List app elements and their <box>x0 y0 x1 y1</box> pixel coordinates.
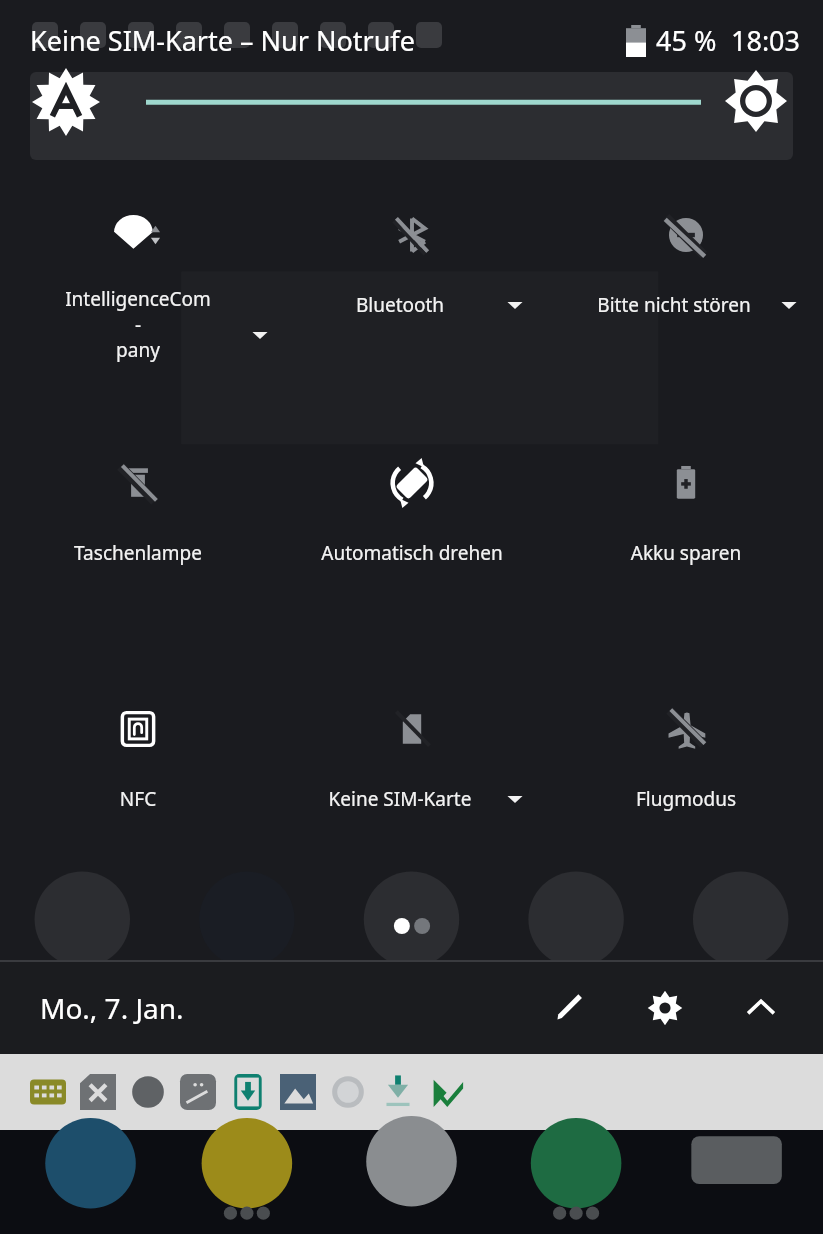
button[interactable]: IntelligenceCom- pany <box>0 192 275 422</box>
button[interactable]: Flugmodus <box>549 686 823 886</box>
staticText: Akku sparen <box>586 540 786 566</box>
button[interactable]: Benachrichtigung <box>380 1074 416 1110</box>
button[interactable]: Benachrichtigung <box>80 1074 116 1110</box>
button[interactable]: Helligkeit <box>30 72 793 160</box>
staticText: 45 % <box>656 22 717 59</box>
button[interactable]: Benachrichtigung <box>180 1074 216 1110</box>
button[interactable]: Keine SIM-Karte <box>275 686 549 886</box>
button[interactable]: Akku sparen <box>549 440 823 640</box>
button[interactable]: Automatisch drehen <box>275 440 549 640</box>
staticText: Bitte nicht stören <box>574 292 774 318</box>
staticText: IntelligenceCom- pany <box>63 286 213 362</box>
staticText: Flugmodus <box>586 786 786 812</box>
button[interactable]: Helligkeitsregler <box>725 70 787 132</box>
staticText: Keine SIM-Karte <box>300 786 500 812</box>
button[interactable]: Taschenlampe <box>0 440 275 640</box>
button[interactable]: Einstellungen <box>637 980 693 1036</box>
button[interactable]: NFC <box>0 686 275 886</box>
button[interactable]: Benachrichtigung <box>30 1074 66 1110</box>
staticText: Automatisch drehen <box>312 540 512 566</box>
button[interactable]: Bluetooth <box>275 192 549 422</box>
staticText: 18:03 <box>731 22 801 59</box>
staticText: Taschenlampe <box>38 540 238 566</box>
button[interactable]: Benachrichtigung <box>280 1074 316 1110</box>
button[interactable]: Einklappen <box>733 980 789 1036</box>
staticText: Keine SIM-Karte – Nur Notrufe <box>30 22 415 59</box>
staticText: Mo., 7. Jan. <box>40 989 184 1027</box>
staticText: Bluetooth <box>300 292 500 318</box>
button[interactable]: Bearbeiten <box>541 980 597 1036</box>
button[interactable]: Benachrichtigung <box>130 1074 166 1110</box>
button[interactable]: Benachrichtigung <box>230 1074 266 1110</box>
button[interactable]: Bitte nicht stören <box>549 192 823 422</box>
button[interactable]: Automatische Helligkeit <box>32 68 100 136</box>
staticText: NFC <box>38 786 238 812</box>
button[interactable]: Benachrichtigung <box>430 1074 466 1110</box>
button[interactable]: Benachrichtigung <box>330 1074 366 1110</box>
